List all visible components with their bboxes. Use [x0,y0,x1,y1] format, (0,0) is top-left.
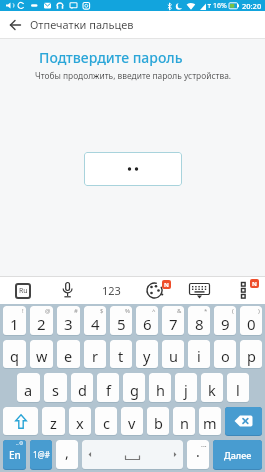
staticText: ! [22,307,24,315]
button[interactable]: 5 [110,306,132,336]
button[interactable]: 1 [3,306,26,336]
staticText: d [78,380,87,400]
button[interactable]: Далее [213,440,262,470]
staticText: 8 [195,314,204,334]
staticText: 1@# [33,449,50,460]
button[interactable]: 1@# [30,440,52,470]
staticText: ^ [152,307,156,315]
button[interactable]: 7 [162,306,184,336]
button[interactable]: h [149,373,171,403]
button[interactable]: t [110,340,132,369]
staticText: h [156,380,165,400]
staticText: v [128,413,136,433]
button[interactable]: 0 [240,306,262,336]
staticText: s [52,380,59,400]
button[interactable]: k [201,373,223,403]
button[interactable]: 8 [188,306,210,336]
staticText: w [36,346,48,366]
button[interactable]: 3 [57,306,80,336]
staticText: g [130,380,139,400]
button[interactable] [225,407,262,436]
staticText: 5 [117,314,126,334]
staticText: En [9,448,21,462]
button[interactable]: u [162,340,184,369]
staticText: % [125,307,130,315]
button[interactable]: j [175,373,197,403]
button[interactable]: 9 [214,306,236,336]
staticText: u [169,346,178,366]
staticText: ..⚙ [16,440,24,447]
staticText: 6 [143,314,152,334]
button[interactable]: c [95,407,117,436]
button[interactable]: En [3,440,26,470]
button[interactable]: p [240,340,262,369]
button[interactable]: . [187,440,209,470]
button[interactable]: 123 [89,277,133,304]
staticText: t [118,346,124,366]
staticText: e [64,346,73,366]
button[interactable]: s [44,373,67,403]
staticText: 20:20 [242,1,262,11]
staticText: 7 [169,314,178,334]
button[interactable] [82,440,183,470]
staticText: f [106,380,111,400]
staticText: , [65,443,69,462]
button[interactable]: b [147,407,169,436]
staticText: 4 [91,314,100,334]
staticText: ... [201,440,207,450]
button[interactable] [3,407,38,436]
button[interactable] [0,11,30,38]
button[interactable]: m [199,407,221,436]
button[interactable]: y [136,340,158,369]
button[interactable]: r [84,340,106,369]
button[interactable]: 4 [84,306,106,336]
button[interactable]: w [30,340,53,369]
staticText: l [236,380,240,400]
staticText: k [208,380,216,400]
staticText: q [10,346,19,366]
button[interactable]: g [123,373,145,403]
staticText: c [103,413,110,433]
button[interactable]: o [214,340,236,369]
button[interactable]: i [188,340,210,369]
button[interactable]: x [69,407,91,436]
button[interactable]: v [121,407,143,436]
staticText: p [247,346,256,366]
button[interactable]: z [42,407,65,436]
button[interactable]: , [56,440,78,470]
staticText: N [164,281,169,289]
staticText: i [197,346,201,366]
button[interactable] [84,152,182,186]
staticText: N [252,280,257,288]
staticText: $ [100,307,104,315]
button[interactable]: d [71,373,93,403]
button[interactable]: f [97,373,119,403]
button[interactable]: a [17,373,40,403]
staticText: * [204,307,208,315]
button[interactable]: Ru [0,277,45,304]
button[interactable]: e [57,340,80,369]
staticText: j [184,380,188,400]
staticText: a [24,380,33,400]
staticText: . [196,442,200,461]
staticText: # [74,307,78,315]
button[interactable] [177,277,221,304]
button[interactable]: n [173,407,195,436]
button[interactable] [45,277,89,304]
staticText: 123 [102,283,121,298]
staticText: 1 [10,314,19,334]
staticText: m [203,413,217,433]
button[interactable]: l [227,373,249,403]
staticText: @ [45,307,51,315]
button[interactable]: q [3,340,26,369]
button[interactable]: N [133,277,177,304]
button[interactable]: N [221,277,265,304]
staticText: 16% [213,1,227,11]
staticText: ) [258,307,260,315]
button[interactable]: 6 [136,306,158,336]
staticText: Подтвердите пароль [39,48,183,67]
staticText: & [177,307,182,315]
staticText: Отпечатки пальцев [30,17,134,32]
staticText: 9 [221,314,230,334]
button[interactable]: 2 [30,306,53,336]
